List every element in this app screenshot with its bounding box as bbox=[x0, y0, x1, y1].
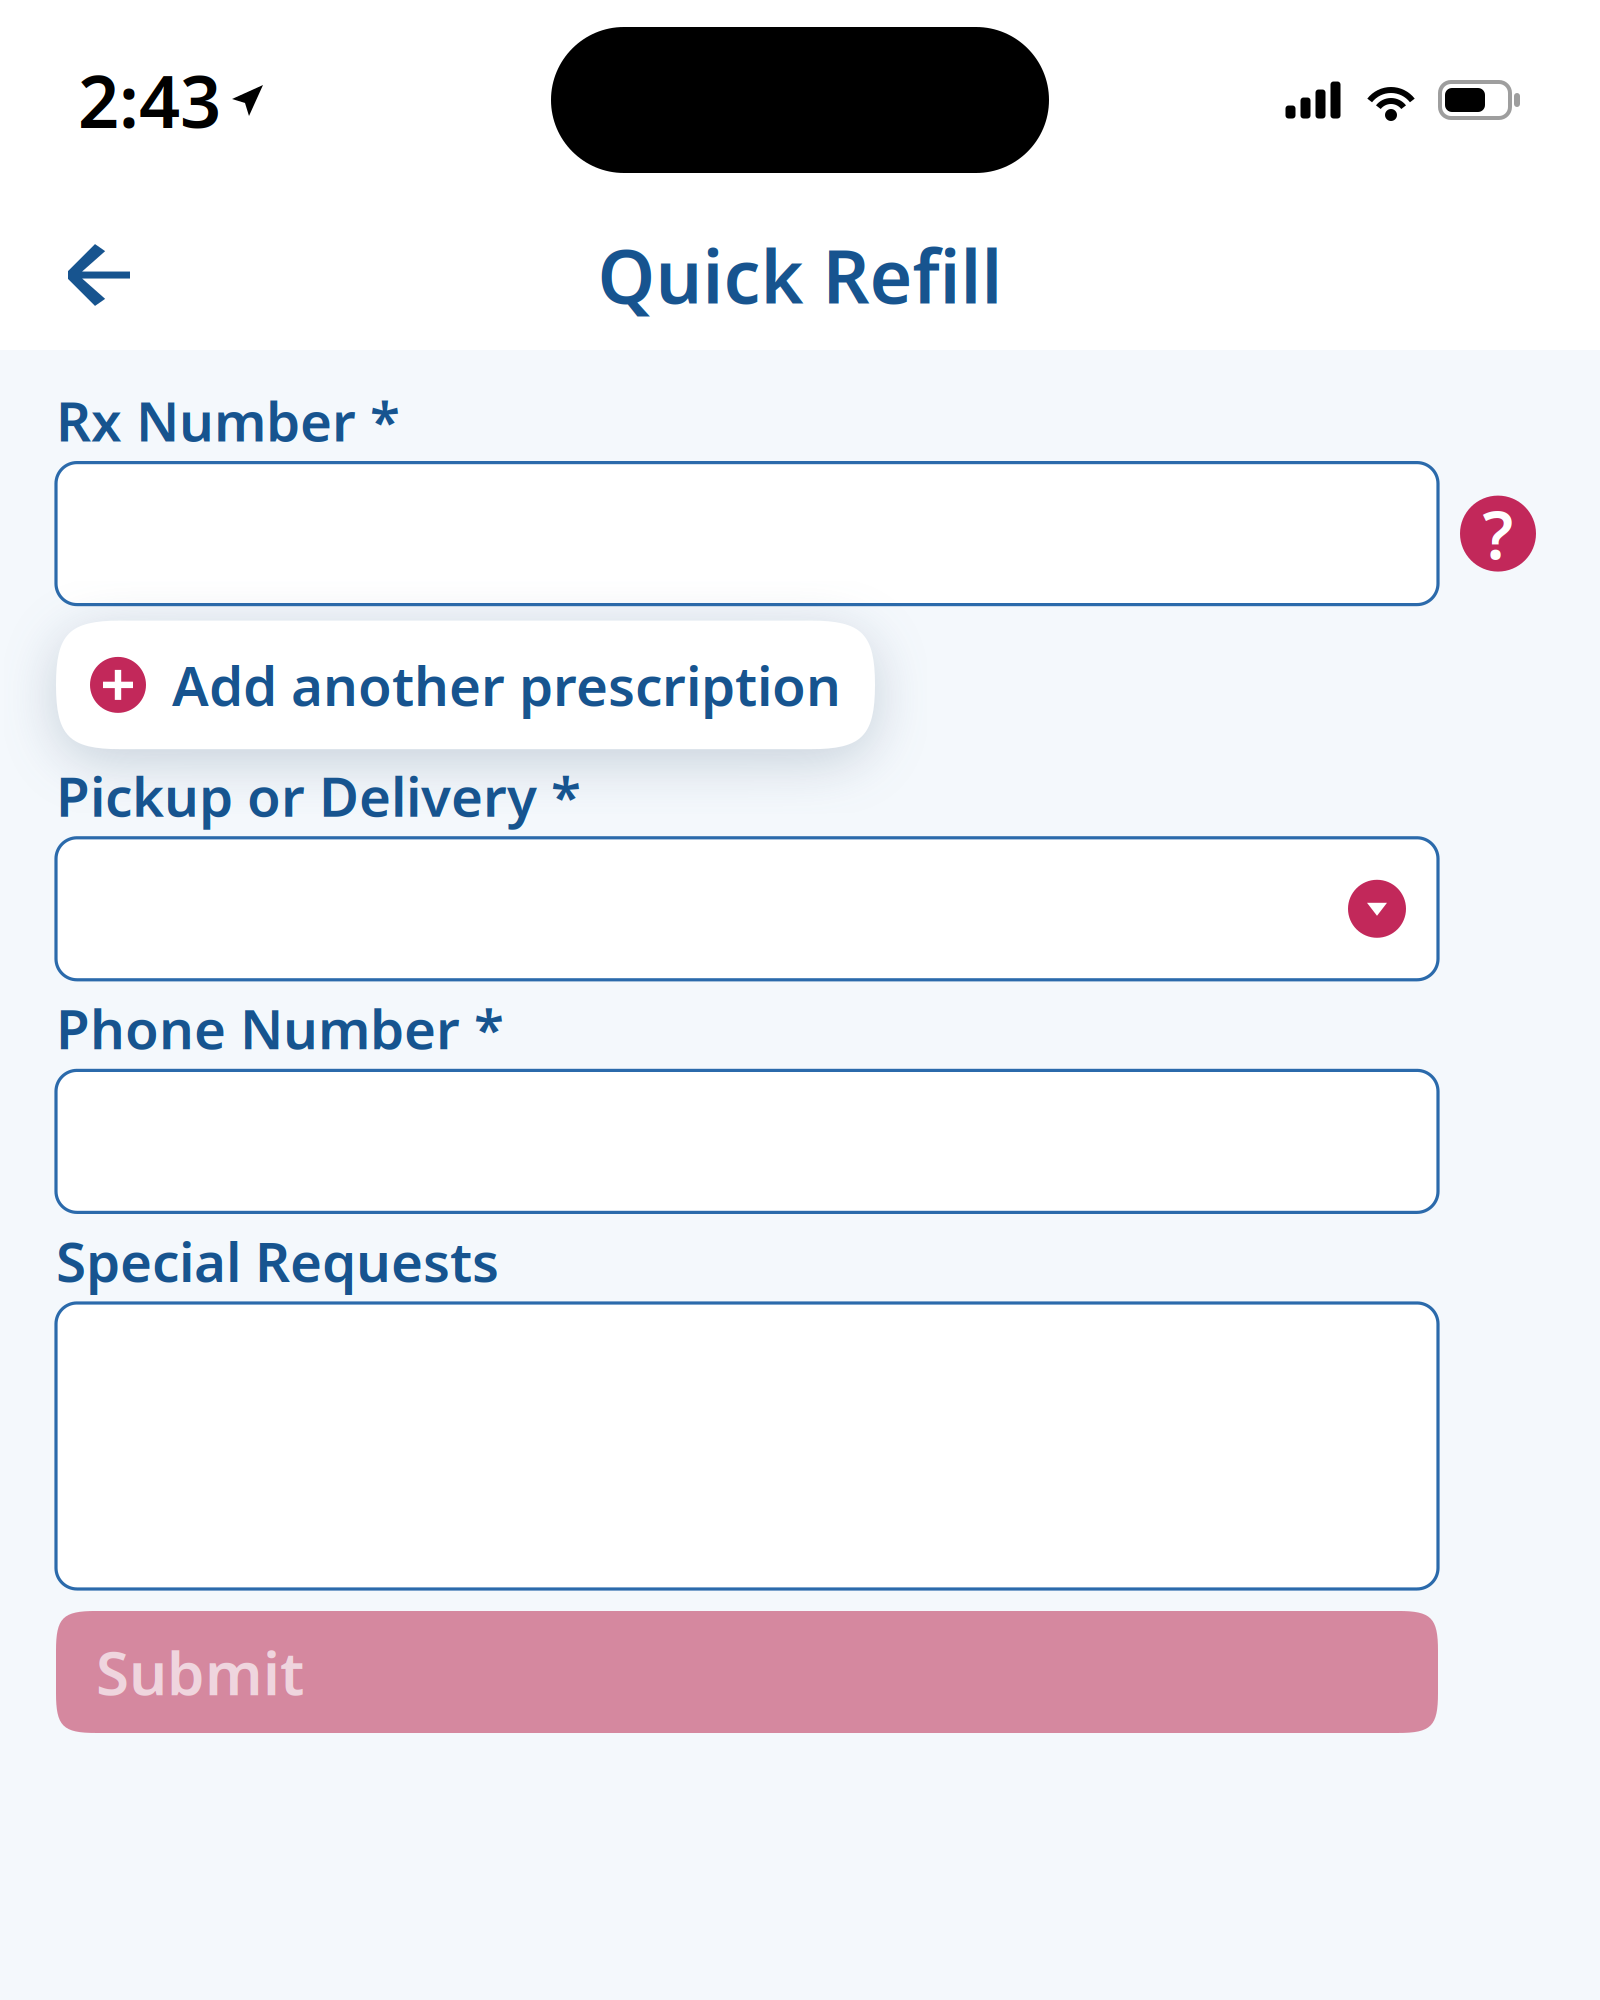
staticText: Pickup or Delivery * bbox=[56, 759, 581, 832]
button[interactable]: Submit bbox=[56, 1611, 1438, 1733]
button[interactable]: Special Requests bbox=[56, 1303, 1438, 1589]
staticText: ? bbox=[1482, 489, 1513, 578]
button[interactable]: Rx Number bbox=[56, 463, 1438, 605]
button[interactable]: Phone Number * bbox=[56, 1070, 1438, 1212]
staticText: Add another prescription bbox=[172, 649, 841, 721]
button[interactable]: Add another prescription bbox=[56, 621, 875, 749]
staticText: Quick Refill bbox=[597, 226, 1002, 324]
staticText: 2:43 bbox=[78, 52, 221, 148]
staticText: Phone Number * bbox=[56, 992, 504, 1064]
button[interactable]: Pickup or Delivery bbox=[56, 838, 1438, 980]
staticText: Special Requests bbox=[56, 1224, 499, 1297]
button[interactable]: Back bbox=[40, 220, 156, 330]
button[interactable]: Choose pickup or delivery bbox=[1348, 880, 1406, 938]
staticText: Submit bbox=[96, 1632, 304, 1712]
staticText: Rx Number * bbox=[56, 384, 400, 457]
button[interactable]: What is an Rx number? bbox=[1460, 496, 1536, 572]
